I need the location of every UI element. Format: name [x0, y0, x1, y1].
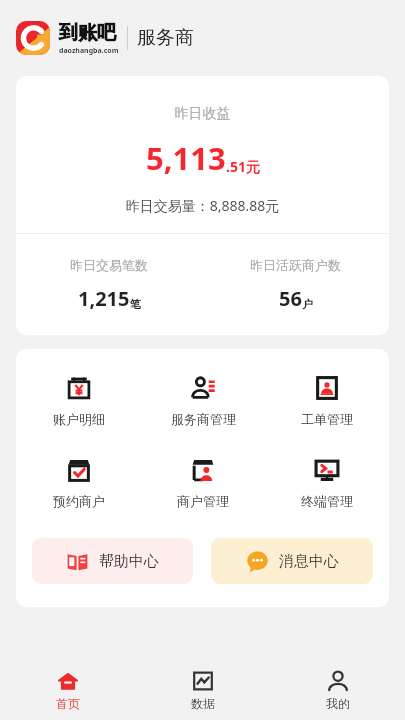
staticText: 昨日交易笔数: [70, 257, 148, 273]
button[interactable]: 商户管理: [141, 453, 265, 513]
button[interactable]: 服务商管理: [141, 371, 265, 431]
staticText: 服务商管理: [171, 411, 236, 427]
button[interactable]: 数据: [135, 660, 270, 720]
staticText: daozhangba.com: [59, 46, 119, 56]
button[interactable]: 终端管理: [265, 453, 389, 513]
staticText: 终端管理: [301, 493, 353, 509]
button[interactable]: 我的: [270, 660, 405, 720]
staticText: 户: [302, 297, 313, 311]
staticText: 1,215: [78, 285, 130, 312]
button[interactable]: 账户明细: [16, 371, 141, 431]
button[interactable]: 预约商户: [16, 453, 141, 513]
staticText: 到账吧: [59, 21, 116, 45]
staticText: 5,113: [146, 137, 226, 179]
staticText: 帮助中心: [99, 552, 159, 571]
staticText: 预约商户: [53, 493, 105, 509]
staticText: 首页: [56, 696, 80, 711]
staticText: 昨日收益: [16, 105, 389, 123]
staticText: 数据: [191, 696, 215, 711]
button[interactable]: 工单管理: [265, 371, 389, 431]
staticText: 我的: [326, 696, 350, 711]
button[interactable]: 帮助中心: [32, 538, 193, 584]
button[interactable]: 首页: [0, 660, 135, 720]
staticText: 昨日交易量：8,888.88元: [16, 196, 389, 215]
staticText: 昨日活跃商户数: [250, 257, 341, 273]
staticText: 56: [279, 285, 302, 312]
staticText: .51元: [226, 157, 260, 176]
staticText: 笔: [130, 297, 141, 311]
staticText: 商户管理: [177, 493, 229, 509]
staticText: 工单管理: [301, 411, 353, 427]
staticText: 消息中心: [279, 552, 339, 571]
staticText: 服务商: [137, 26, 194, 50]
staticText: 账户明细: [53, 411, 105, 427]
button[interactable]: 消息中心: [211, 538, 373, 584]
